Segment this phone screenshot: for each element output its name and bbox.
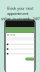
button[interactable] <box>7 52 34 55</box>
button[interactable] <box>7 43 34 46</box>
staticText: online, in seconds, 24/7 <box>0 16 39 21</box>
staticText: Continue <box>25 55 34 63</box>
staticText: Book your next appointment <box>7 5 33 16</box>
staticText: Service <box>7 33 16 36</box>
button[interactable] <box>7 47 34 51</box>
button[interactable]: Continue <box>25 57 34 61</box>
